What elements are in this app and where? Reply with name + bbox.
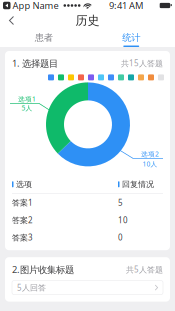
button[interactable]: 统计	[87, 30, 175, 47]
staticText: 回复情况	[122, 179, 154, 189]
staticText: 答案2	[12, 215, 33, 225]
staticText: App Name	[10, 0, 58, 12]
button[interactable]: 5人回答	[12, 281, 163, 295]
staticText: 统计	[122, 32, 140, 43]
staticText: 2.图片收集标题	[12, 263, 74, 276]
staticText: 5	[118, 197, 123, 208]
staticText: 0	[118, 232, 123, 243]
staticText: 答案3	[12, 232, 33, 243]
staticText: 历史	[75, 13, 99, 28]
button[interactable]: 患者	[0, 30, 87, 47]
staticText: 9:41 AM	[109, 0, 143, 12]
staticText: 患者	[35, 32, 53, 43]
staticText: 5人	[21, 103, 32, 112]
staticText: 选项	[16, 179, 32, 189]
staticText: 10	[118, 215, 128, 225]
staticText: 共5人答题	[126, 264, 163, 275]
button[interactable]: Back	[0, 12, 24, 29]
staticText: 选项2	[141, 149, 159, 158]
staticText: 选项1	[18, 94, 36, 103]
staticText: 答案1	[12, 197, 33, 208]
staticText: 共15人答题	[121, 58, 163, 68]
staticText: 1. 选择题目	[12, 57, 58, 69]
staticText: 5人回答	[17, 282, 46, 293]
staticText: 10人	[142, 159, 157, 168]
